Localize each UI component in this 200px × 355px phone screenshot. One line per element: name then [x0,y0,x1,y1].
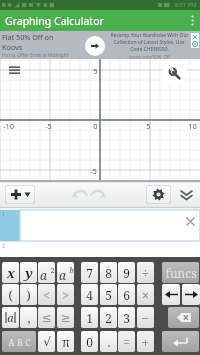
staticText: ) [26,287,31,303]
button[interactable]: ÷ [137,262,154,283]
button[interactable]: 3 [118,307,135,328]
staticText: > [62,287,69,303]
staticText: x [7,264,15,282]
staticText: Revamp Your Wardrobe With Our [110,32,189,39]
staticText: Code CHEERS50. [130,46,169,53]
staticText: 2 [50,265,55,275]
button[interactable]: π [57,331,74,352]
staticText: 1 [86,310,93,326]
button[interactable]: ( [2,284,19,305]
staticText: × [142,287,149,303]
staticText: 3 [123,310,130,326]
staticText: ≥ [60,311,71,325]
button[interactable]: ↵ [162,331,199,352]
button[interactable]: funcs [162,262,199,283]
button[interactable]: 5 [100,284,117,305]
staticText: b [69,265,74,275]
staticText: 1 [2,210,6,217]
button[interactable]: Graph tools [163,62,186,85]
button[interactable]: ) [20,284,37,305]
staticText: -5 [90,166,97,176]
staticText: y [25,264,33,282]
button[interactable]: a2 [38,262,55,283]
staticText: , [27,310,31,326]
button[interactable]: Menu [5,61,23,79]
button[interactable]: 1 [81,307,98,328]
button[interactable]: Flat 50% Off on [0,31,200,59]
button[interactable]: Add expression [5,185,35,204]
staticText: . [107,334,111,350]
staticText: 2 [2,242,6,249]
staticText: -10 [3,121,14,131]
staticText: funcs [165,265,197,281]
button[interactable]: |a| [2,307,19,328]
button[interactable]: 9 [118,262,135,283]
button[interactable]: y [20,262,37,283]
button[interactable]: , [20,307,37,328]
button[interactable]: 8 [100,262,117,283]
staticText: 7 [86,265,93,281]
staticText: 0 [93,121,98,131]
staticText: a [59,267,66,280]
button[interactable]: Undo [71,185,90,204]
button[interactable]: × [137,284,154,305]
staticText: 5 [146,121,151,131]
button[interactable]: . [100,331,117,352]
button[interactable]: Graph settings [146,185,171,204]
staticText: 9:57 PM [174,1,197,9]
staticText: 5 [105,287,112,303]
staticText: -5 [45,121,52,131]
button[interactable]: Redo [88,185,107,204]
button[interactable]: ABC [2,331,36,352]
staticText: ( [8,287,13,303]
staticText: Graphing Calculator [5,14,104,28]
button[interactable]: ≤ [38,307,55,328]
button[interactable]: 4 [81,284,98,305]
staticText: Collection of Latest Styles. Use [113,39,185,46]
staticText: 5 [93,66,98,76]
staticText: Hurry, Offer Ends at Midnight [2,52,69,59]
staticText: 8 [105,265,112,281]
staticText: √ [43,335,51,349]
button[interactable]: − [137,307,154,328]
button[interactable]: Hide keypad [177,185,196,204]
staticText: 2 [105,310,112,326]
staticText: ÷ [142,265,149,281]
button[interactable]: x [2,262,19,283]
button[interactable]: ⌫ [168,307,199,328]
button[interactable]: ← [162,284,180,305]
button[interactable]: 7 [81,262,98,283]
staticText: koovs.com/50%_Off [129,54,170,60]
staticText: 0 [86,334,93,350]
button[interactable]: 0 [81,331,98,352]
staticText: ≤ [41,311,52,325]
button[interactable]: ≥ [57,307,74,328]
button[interactable]: 2 [100,307,117,328]
button[interactable]: ab [57,262,74,283]
staticText: 4 [86,287,93,303]
staticText: Flat 50% Off on [2,32,54,42]
staticText: a [7,310,14,325]
button[interactable]: Open ad [85,36,105,56]
staticText: a [40,267,47,280]
staticText: < [43,287,50,303]
staticText: 6 [123,287,130,303]
button[interactable]: → [182,284,200,305]
button[interactable]: Delete expression [184,215,197,228]
staticText: 9 [123,265,130,281]
staticText: A B C [8,336,31,348]
button[interactable]: > [57,284,74,305]
staticText: − [142,310,149,326]
staticText: Koovs [2,42,23,52]
button[interactable]: 6 [118,284,135,305]
staticText: π [62,334,70,350]
staticText: = [123,334,130,350]
button[interactable]: = [118,331,135,352]
staticText: + [142,334,149,350]
button[interactable]: √ [38,331,55,352]
button[interactable]: < [38,284,55,305]
staticText: 10 [188,121,197,131]
button[interactable]: More options [184,10,200,31]
button[interactable]: + [137,331,154,352]
